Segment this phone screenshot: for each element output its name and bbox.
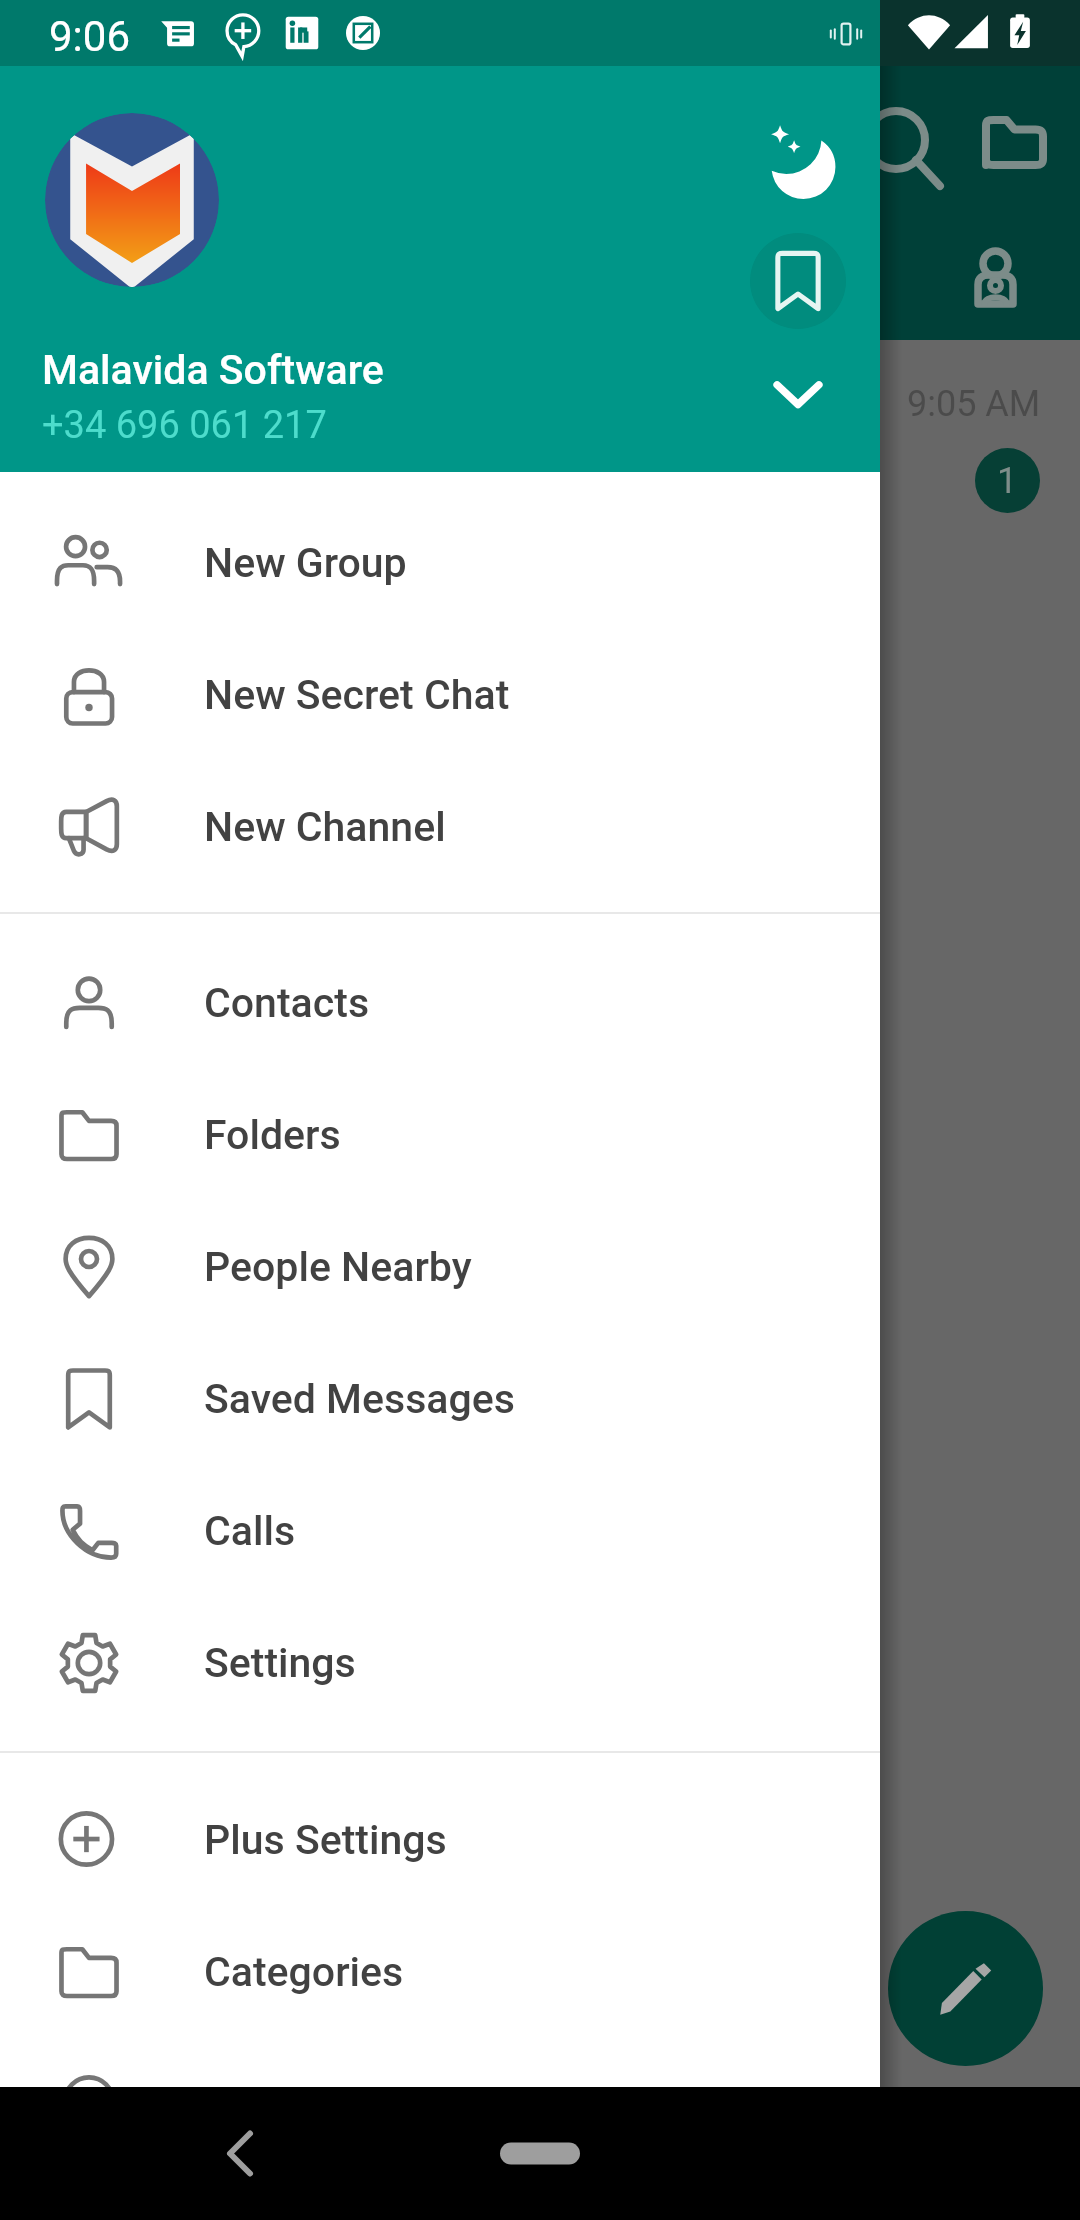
button[interactable]: People Nearby xyxy=(0,1201,880,1333)
staticText: Folders xyxy=(204,1111,341,1159)
staticText: People Nearby xyxy=(204,1243,472,1291)
button[interactable]: Categories xyxy=(0,1906,880,2038)
button[interactable]: New Secret Chat xyxy=(0,629,880,761)
staticText: 9:05 AM xyxy=(907,383,1041,425)
staticText: Malavida Software xyxy=(42,346,384,394)
staticText: Settings xyxy=(204,1639,356,1687)
staticText: New Secret Chat xyxy=(204,671,510,719)
button[interactable]: Expand accounts xyxy=(750,345,846,441)
staticText: Plus Settings xyxy=(204,1816,447,1864)
button[interactable]: Saved Messages xyxy=(0,1333,880,1465)
staticText: Calls xyxy=(204,1507,296,1555)
staticText: New Group xyxy=(204,539,407,587)
button[interactable]: Saved messages xyxy=(750,233,846,329)
button[interactable]: Plus Settings xyxy=(0,1774,880,1906)
staticText: 1 xyxy=(997,460,1018,502)
staticText: 9:06 xyxy=(49,12,130,61)
button[interactable]: New Channel xyxy=(0,761,880,893)
staticText: Emoji xyxy=(204,2080,307,2128)
button[interactable]: Night mode xyxy=(748,110,848,210)
staticText: Saved Messages xyxy=(204,1375,515,1423)
button[interactable]: Calls xyxy=(0,1465,880,1597)
staticText: +34 696 061 217 xyxy=(42,403,327,448)
staticText: Categories xyxy=(204,1948,404,1996)
staticText: Contacts xyxy=(204,979,370,1027)
button[interactable]: Contacts xyxy=(0,937,880,1069)
button[interactable]: Folders xyxy=(0,1069,880,1201)
button[interactable]: Settings xyxy=(0,1597,880,1729)
button[interactable]: New Group xyxy=(0,497,880,629)
button[interactable]: Emoji xyxy=(0,2038,880,2170)
button[interactable]: New message xyxy=(888,1911,1043,2066)
button[interactable] xyxy=(45,113,219,287)
staticText: New Channel xyxy=(204,803,446,851)
